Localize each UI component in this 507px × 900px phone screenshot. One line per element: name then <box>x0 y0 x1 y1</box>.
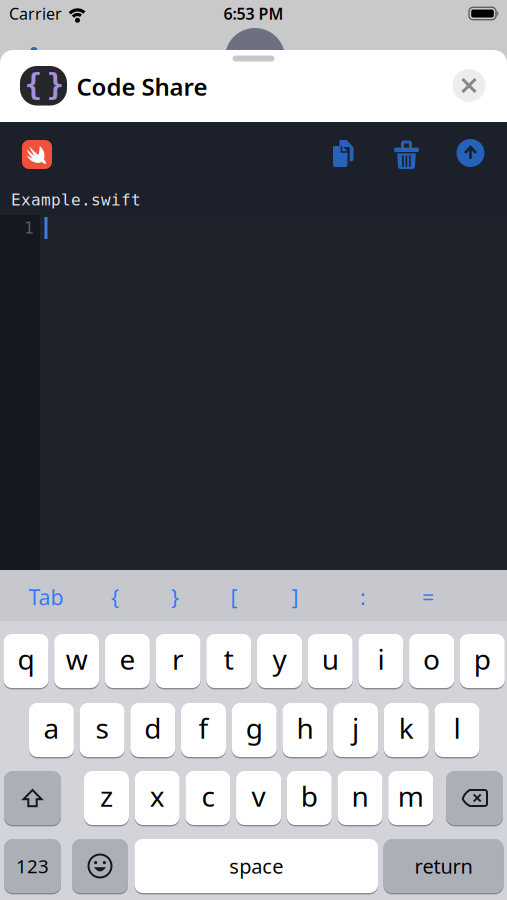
staticText: space <box>229 853 283 879</box>
button[interactable]: { <box>85 571 145 622</box>
staticText: return <box>414 853 472 879</box>
button[interactable]: t <box>206 634 251 688</box>
button[interactable] <box>22 140 52 169</box>
staticText: 6:53 PM <box>223 3 283 24</box>
staticText: i <box>377 640 384 678</box>
staticText: Tab <box>28 583 63 611</box>
staticText: } <box>171 583 179 611</box>
button[interactable]: f <box>181 703 226 757</box>
staticText: p <box>474 640 491 678</box>
button[interactable]: [ <box>204 571 264 622</box>
button[interactable]: s <box>80 703 125 757</box>
button[interactable]: ] <box>265 571 325 622</box>
staticText: { <box>24 68 42 101</box>
button[interactable]: h <box>282 703 327 757</box>
staticText: v <box>252 777 266 815</box>
staticText: { <box>111 583 119 611</box>
button[interactable]: d <box>130 703 175 757</box>
button[interactable]: c <box>185 771 230 825</box>
staticText: q <box>17 640 34 678</box>
staticText: x <box>150 777 165 815</box>
button[interactable]: o <box>409 634 454 688</box>
button[interactable] <box>456 139 484 167</box>
staticText: 1 <box>24 219 34 237</box>
button[interactable]: space <box>134 839 378 893</box>
staticText: w <box>66 640 88 678</box>
button[interactable]: v <box>236 771 281 825</box>
button[interactable]: y <box>257 634 302 688</box>
button[interactable]: k <box>384 703 429 757</box>
staticText: j <box>352 709 359 747</box>
button[interactable]: return <box>383 839 503 893</box>
button[interactable]: m <box>388 771 433 825</box>
button[interactable]: j <box>333 703 378 757</box>
button[interactable]: = <box>398 571 458 622</box>
staticText: Example.swift <box>11 191 141 209</box>
staticText: r <box>172 640 184 678</box>
staticText: l <box>453 709 460 747</box>
staticText: 123 <box>16 854 49 878</box>
button[interactable]: } <box>145 571 205 622</box>
button[interactable]: p <box>460 634 505 688</box>
staticText: } <box>46 68 64 101</box>
button[interactable]: z <box>84 771 129 825</box>
button[interactable]: x <box>135 771 180 825</box>
button[interactable]: q <box>3 634 48 688</box>
staticText: t <box>224 640 234 678</box>
staticText: a <box>43 709 59 747</box>
button[interactable]: r <box>156 634 201 688</box>
button[interactable]: w <box>54 634 99 688</box>
staticText: f <box>198 709 208 747</box>
staticText: Carrier <box>9 3 62 24</box>
staticText: z <box>100 777 113 815</box>
staticText: e <box>119 640 135 678</box>
button[interactable]: g <box>232 703 277 757</box>
staticText: d <box>144 709 161 747</box>
staticText: o <box>423 640 440 678</box>
button[interactable]: Tab <box>16 571 76 622</box>
button[interactable]: a <box>29 703 74 757</box>
button[interactable] <box>4 771 61 825</box>
staticText: k <box>399 709 414 747</box>
staticText: c <box>201 777 214 815</box>
staticText: : <box>360 583 366 611</box>
button[interactable]: i <box>358 634 403 688</box>
button[interactable]: 123 <box>4 839 61 893</box>
button[interactable] <box>394 138 419 169</box>
staticText: u <box>322 640 339 678</box>
button[interactable]: n <box>337 771 382 825</box>
button[interactable] <box>452 69 485 102</box>
staticText: m <box>398 777 424 815</box>
button[interactable]: b <box>287 771 332 825</box>
button[interactable] <box>446 771 503 825</box>
button[interactable]: : <box>333 571 393 622</box>
staticText: = <box>422 583 434 611</box>
staticText: s <box>96 709 109 747</box>
staticText: ] <box>291 583 298 611</box>
button[interactable]: l <box>434 703 479 757</box>
staticText: h <box>296 709 313 747</box>
button[interactable]: e <box>105 634 150 688</box>
button[interactable]: u <box>308 634 353 688</box>
staticText: [ <box>230 583 237 611</box>
button[interactable] <box>72 839 128 893</box>
staticText: b <box>301 777 318 815</box>
staticText: Code Share <box>76 71 207 102</box>
staticText: y <box>272 640 286 678</box>
staticText: n <box>351 777 368 815</box>
button[interactable] <box>332 139 355 168</box>
staticText: g <box>246 709 263 747</box>
